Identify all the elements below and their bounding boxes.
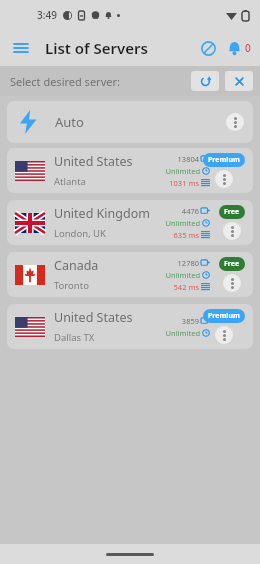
staticText: 13804	[177, 154, 199, 164]
staticText: 0	[245, 41, 251, 55]
staticText: Dallas TX	[54, 331, 95, 344]
staticText: Free	[224, 259, 240, 269]
staticText: 635 ms	[173, 230, 199, 240]
button[interactable]: More options	[223, 222, 241, 240]
button[interactable]: Free	[219, 205, 245, 219]
staticText: Unlimited	[165, 218, 200, 228]
staticText: 1031 ms	[169, 178, 199, 188]
staticText: Free	[224, 207, 240, 217]
button[interactable]: United Kingdom	[7, 200, 253, 245]
staticText: London, UK	[54, 227, 106, 240]
staticText: United States	[54, 153, 133, 170]
button[interactable]: Notifications	[223, 37, 245, 59]
staticText: 12780	[177, 258, 199, 268]
staticText: 4476	[181, 206, 199, 216]
button[interactable]: More options	[223, 274, 241, 292]
staticText: Premium	[208, 155, 240, 165]
button[interactable]: VPN disconnected	[197, 37, 219, 59]
staticText: Select desired server:	[10, 74, 120, 89]
staticText: Unlimited	[165, 270, 200, 280]
staticText: Atlanta	[54, 175, 86, 188]
staticText: Premium	[208, 311, 240, 321]
button[interactable]: United States	[7, 304, 253, 349]
button[interactable]: Premium	[203, 309, 245, 323]
button[interactable]: More options	[215, 326, 233, 344]
staticText: Unlimited	[165, 166, 200, 176]
button[interactable]: Free	[219, 257, 245, 271]
button[interactable]: Auto	[7, 101, 253, 143]
staticText: United States	[54, 309, 133, 326]
staticText: Toronto	[54, 279, 89, 292]
button[interactable]: United States	[7, 148, 253, 193]
button[interactable]: More options	[215, 170, 233, 188]
staticText: Auto	[55, 113, 84, 131]
button[interactable]: More options	[226, 113, 244, 131]
staticText: United Kingdom	[54, 205, 150, 222]
staticText: List of Servers	[45, 38, 148, 58]
staticText: 3859	[181, 316, 199, 326]
button[interactable]: Close	[225, 71, 253, 91]
button[interactable]: Canada	[7, 252, 253, 297]
button[interactable]: Open navigation menu	[8, 35, 34, 61]
staticText: 3:49	[37, 8, 57, 22]
button[interactable]: Refresh server list	[191, 71, 219, 91]
staticText: 542 ms	[173, 282, 199, 292]
staticText: Unlimited	[165, 328, 200, 338]
staticText: Canada	[54, 257, 99, 274]
button[interactable]: Premium	[203, 153, 245, 167]
